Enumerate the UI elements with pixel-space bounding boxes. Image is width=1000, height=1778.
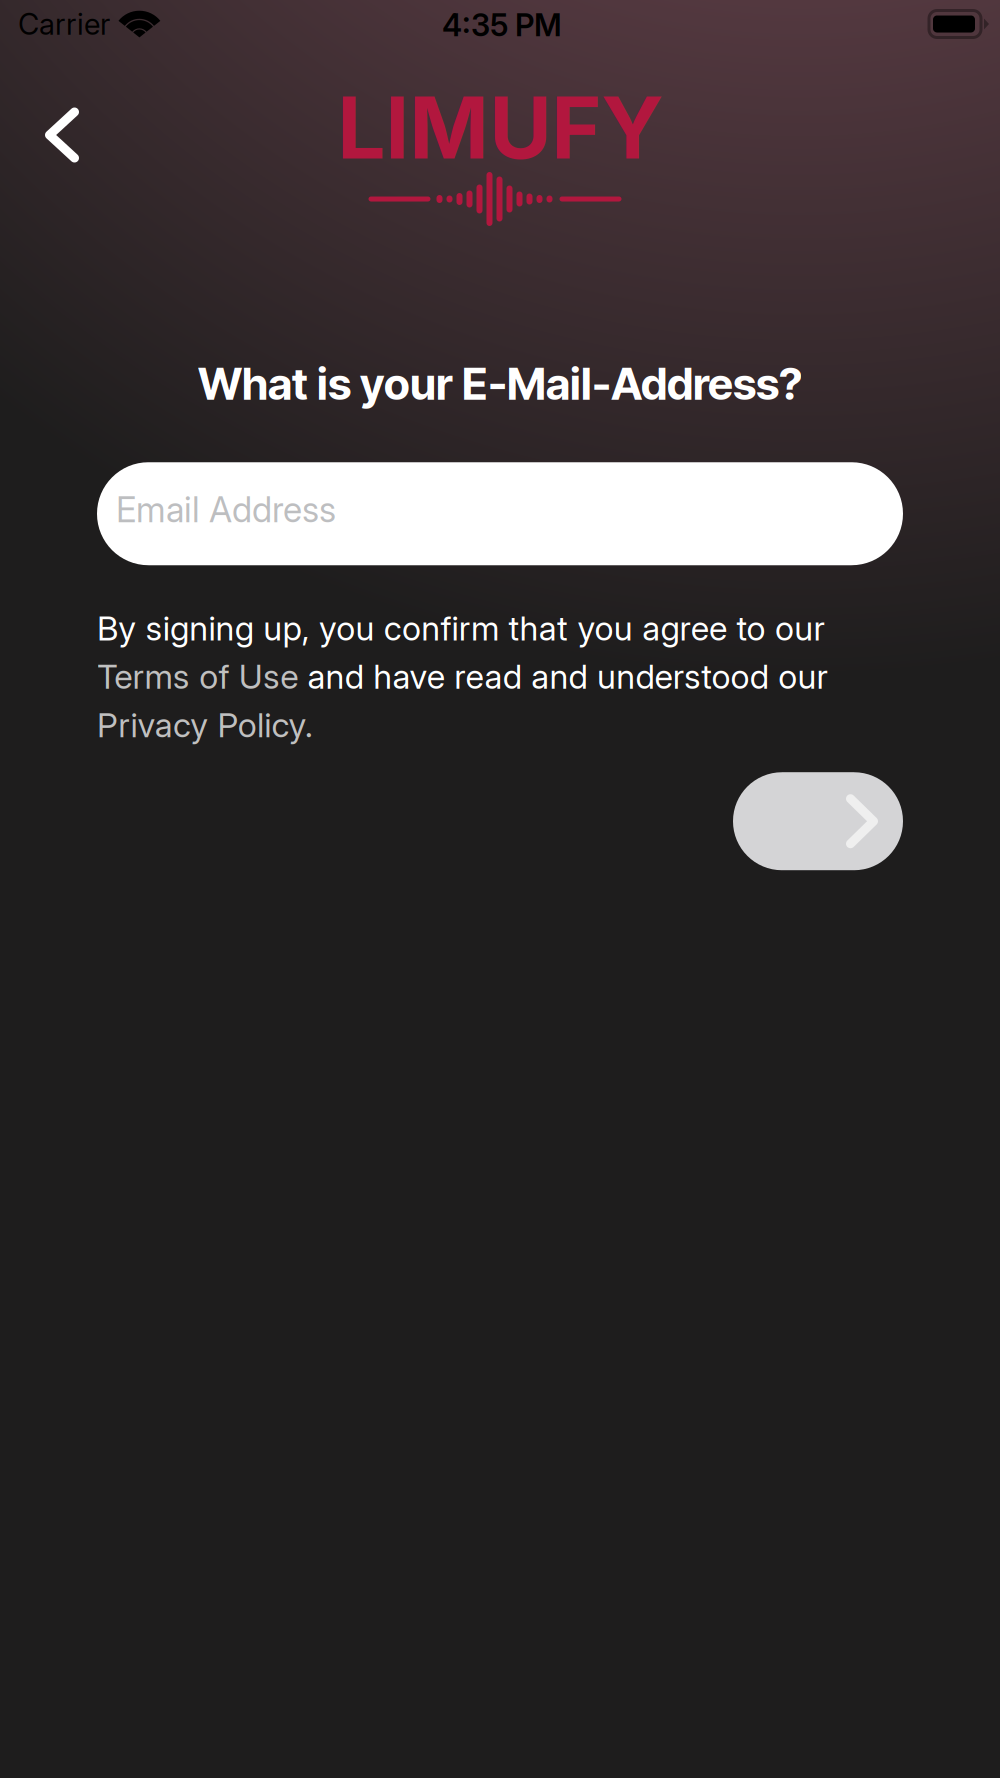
- staticText: 4:35 PM: [442, 6, 562, 43]
- staticText: Carrier: [18, 6, 110, 42]
- staticText: Email Address: [116, 489, 336, 531]
- button[interactable]: Next: [733, 772, 903, 870]
- button[interactable]: Privacy Policy.: [97, 705, 313, 745]
- staticText: By signing up, you confirm that you agre…: [97, 608, 824, 648]
- staticText: Terms of Use: [97, 657, 298, 697]
- staticText: Privacy Policy.: [97, 705, 313, 745]
- staticText: LIMUFY: [337, 76, 663, 179]
- button[interactable]: Terms of Use: [97, 657, 298, 697]
- staticText: and have read and understood our: [298, 657, 828, 697]
- button[interactable]: Back: [22, 95, 102, 175]
- staticText: What is your E-Mail-Address?: [198, 357, 802, 410]
